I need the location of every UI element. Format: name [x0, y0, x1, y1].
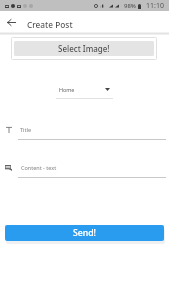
- staticText: 98%: [124, 2, 136, 10]
- button[interactable]: Back: [2, 13, 20, 31]
- staticText: Title: [20, 126, 32, 134]
- staticText: Send!: [73, 227, 96, 239]
- staticText: Select Image!: [58, 43, 110, 54]
- button[interactable]: Send!: [5, 225, 164, 241]
- button[interactable]: Title: [5, 121, 166, 139]
- button[interactable]: Select Image!: [14, 41, 154, 56]
- button[interactable]: Content - text: [5, 160, 166, 178]
- staticText: Create Post: [27, 19, 73, 30]
- staticText: 11:10: [146, 1, 164, 11]
- button[interactable]: Home: [56, 82, 113, 99]
- staticText: Home: [59, 86, 75, 93]
- staticText: Content - text: [21, 164, 57, 171]
